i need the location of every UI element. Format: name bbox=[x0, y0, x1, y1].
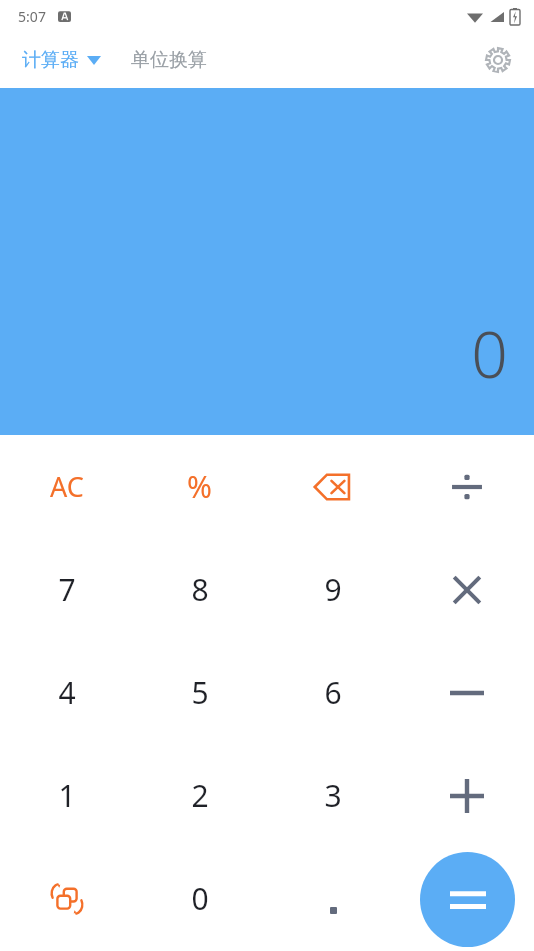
staticText: 3 bbox=[324, 775, 342, 816]
staticText: 计算器 bbox=[22, 48, 79, 72]
button[interactable]: Percent bbox=[133, 435, 266, 538]
button[interactable]: 单位换算 bbox=[127, 42, 211, 78]
button[interactable]: 5 bbox=[133, 641, 266, 744]
button[interactable]: Minus bbox=[400, 641, 534, 744]
button[interactable]: 2 bbox=[133, 744, 266, 847]
staticText: 4 bbox=[58, 672, 76, 713]
button[interactable]: 4 bbox=[0, 641, 133, 744]
staticText: 7 bbox=[58, 569, 76, 610]
button[interactable]: AC bbox=[0, 435, 133, 538]
button[interactable]: 3 bbox=[266, 744, 400, 847]
button[interactable]: Plus bbox=[400, 744, 534, 847]
staticText: 0 bbox=[191, 878, 209, 919]
button[interactable]: 6 bbox=[266, 641, 400, 744]
button[interactable]: 9 bbox=[266, 538, 400, 641]
button[interactable]: Multiply bbox=[400, 538, 534, 641]
staticText: 0 bbox=[471, 310, 508, 397]
button[interactable]: Divide bbox=[400, 435, 534, 538]
staticText: 6 bbox=[324, 672, 342, 713]
staticText: 单位换算 bbox=[131, 48, 207, 72]
button[interactable]: 计算器 bbox=[18, 42, 105, 78]
staticText: 5:07 bbox=[18, 7, 46, 26]
staticText: % bbox=[187, 466, 212, 507]
button[interactable]: Convert bbox=[0, 847, 133, 950]
button[interactable]: 7 bbox=[0, 538, 133, 641]
button[interactable]: Decimal point bbox=[266, 847, 400, 950]
button[interactable]: Settings bbox=[474, 36, 522, 84]
staticText: 8 bbox=[191, 569, 209, 610]
staticText: AC bbox=[50, 468, 84, 505]
staticText: 1 bbox=[58, 775, 76, 816]
button[interactable]: 0 bbox=[133, 847, 266, 950]
button[interactable]: Equals bbox=[420, 852, 515, 947]
button[interactable]: 1 bbox=[0, 744, 133, 847]
button[interactable]: 8 bbox=[133, 538, 266, 641]
staticText: 2 bbox=[191, 775, 209, 816]
staticText: 9 bbox=[324, 569, 342, 610]
button[interactable]: Backspace bbox=[266, 435, 400, 538]
staticText: 5 bbox=[191, 672, 209, 713]
